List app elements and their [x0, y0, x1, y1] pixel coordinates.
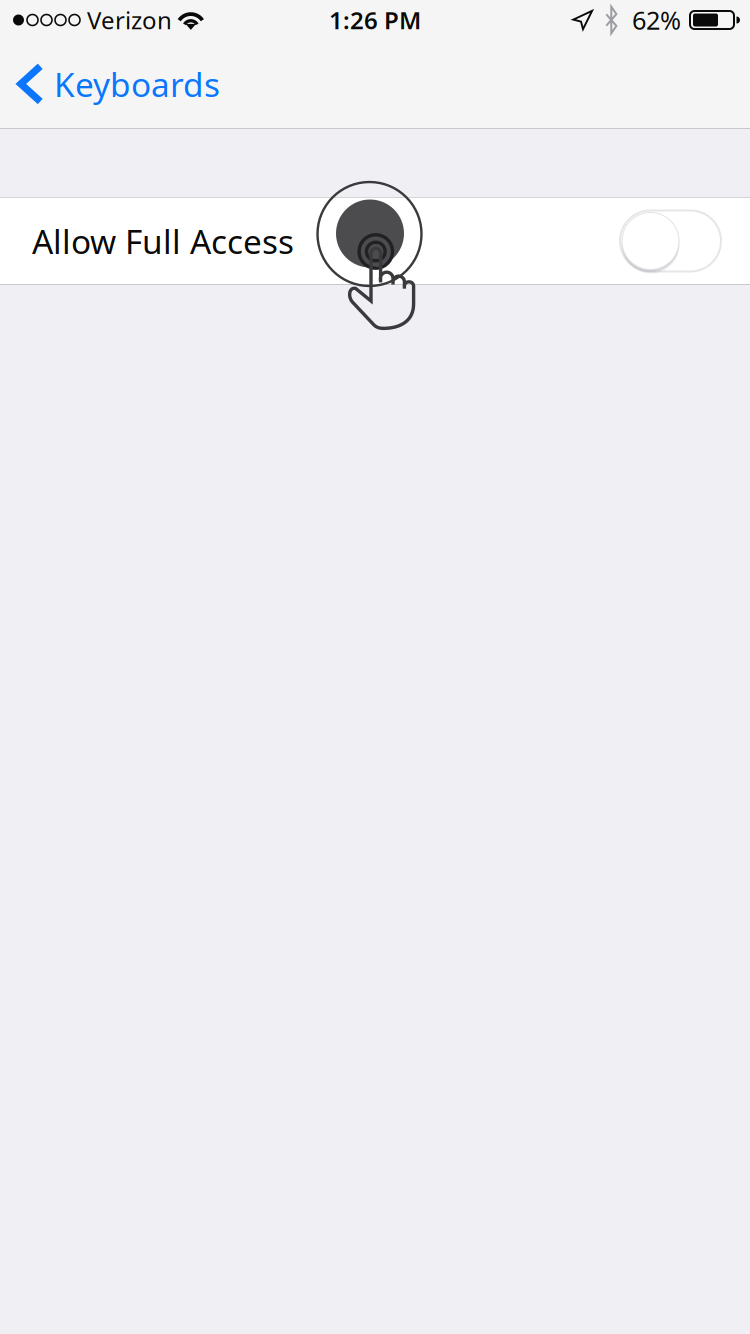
button[interactable]: Allow Full Access: [0, 198, 750, 284]
staticText: Allow Full Access: [32, 219, 294, 263]
staticText: Keyboards: [54, 62, 220, 106]
button[interactable]: Keyboards: [0, 40, 236, 128]
staticText: 1:26 PM: [329, 4, 421, 36]
staticText: 62%: [632, 3, 681, 37]
staticText: Verizon: [87, 4, 172, 36]
